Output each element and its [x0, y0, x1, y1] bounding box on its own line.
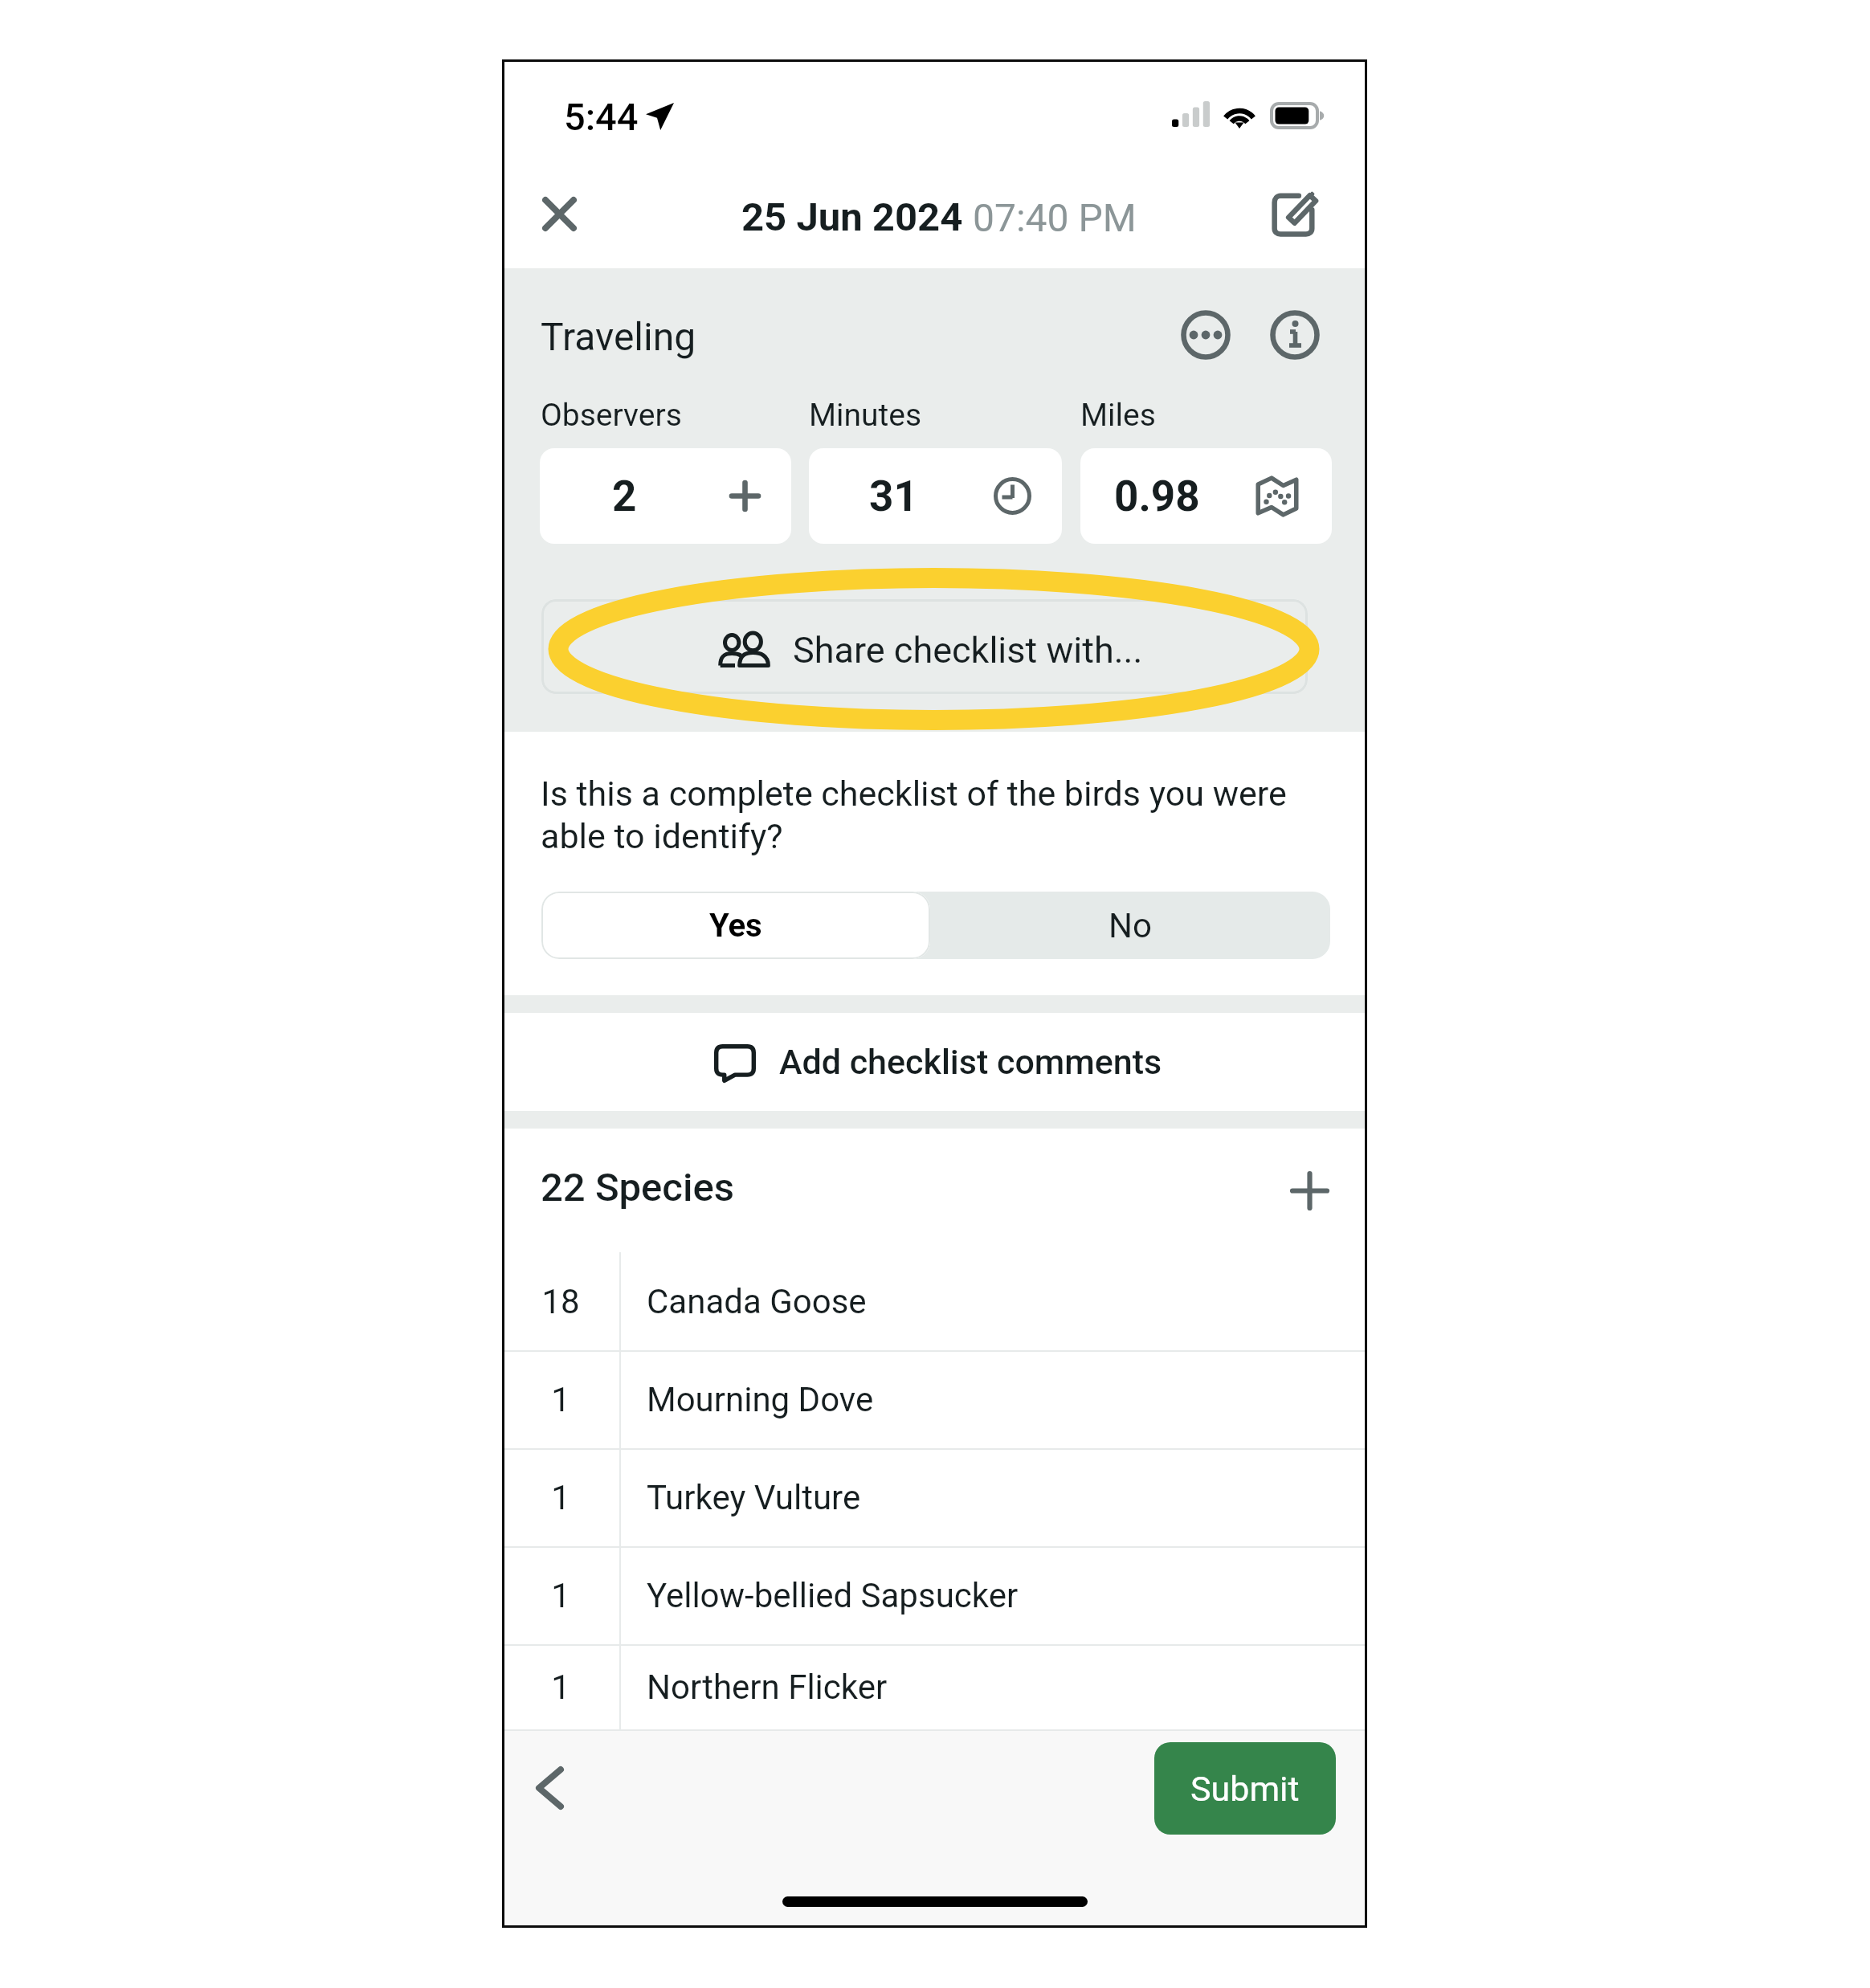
button[interactable]: Add species: [1271, 1152, 1348, 1229]
staticText: No: [1109, 906, 1152, 945]
staticText: Minutes: [809, 397, 922, 434]
button[interactable]: 31: [809, 448, 1062, 544]
staticText: Northern Flicker: [647, 1668, 888, 1707]
staticText: 1: [502, 1380, 619, 1419]
button[interactable]: Back: [511, 1749, 588, 1827]
staticText: 22 Species: [541, 1165, 734, 1210]
button[interactable]: 1: [502, 1546, 1367, 1644]
button[interactable]: Information: [1260, 300, 1330, 370]
staticText: Miles: [1080, 397, 1156, 434]
button[interactable]: Close: [524, 178, 594, 249]
staticText: Add checklist comments: [779, 1042, 1162, 1082]
staticText: 31: [869, 471, 918, 521]
staticText: Submit: [1190, 1769, 1300, 1809]
staticText: Traveling: [541, 314, 696, 359]
staticText: Share checklist with...: [793, 629, 1143, 672]
staticText: Mourning Dove: [647, 1380, 874, 1419]
button[interactable]: Add checklist comments: [502, 1013, 1367, 1111]
staticText: Turkey Vulture: [647, 1478, 861, 1517]
staticText: Canada Goose: [647, 1282, 867, 1321]
staticText: 07:40 PM: [973, 195, 1137, 240]
button[interactable]: 1: [502, 1350, 1367, 1448]
button[interactable]: 1: [502, 1644, 1367, 1729]
button[interactable]: No: [930, 892, 1330, 959]
button[interactable]: Submit: [1154, 1742, 1336, 1835]
button[interactable]: Share checklist with...: [541, 599, 1308, 694]
staticText: 25 Jun 2024: [741, 194, 963, 240]
staticText: 18: [502, 1282, 619, 1321]
button[interactable]: More options: [1170, 300, 1241, 370]
staticText: Yellow-bellied Sapsucker: [647, 1576, 1019, 1615]
staticText: Yes: [709, 907, 762, 945]
staticText: 2: [612, 471, 637, 521]
staticText: 1: [502, 1576, 619, 1615]
button[interactable]: 18: [502, 1252, 1367, 1350]
staticText: 1: [502, 1478, 619, 1517]
staticText: Observers: [541, 397, 682, 434]
button[interactable]: Yes: [541, 892, 930, 959]
button[interactable]: 0.98: [1080, 448, 1332, 544]
staticText: 0.98: [1114, 471, 1200, 521]
button[interactable]: Edit: [1258, 178, 1329, 249]
button[interactable]: 2: [540, 448, 791, 544]
staticText: Is this a complete checklist of the bird…: [541, 774, 1287, 856]
button[interactable]: 1: [502, 1448, 1367, 1546]
staticText: 1: [502, 1668, 619, 1707]
staticText: 5:44: [564, 95, 639, 139]
